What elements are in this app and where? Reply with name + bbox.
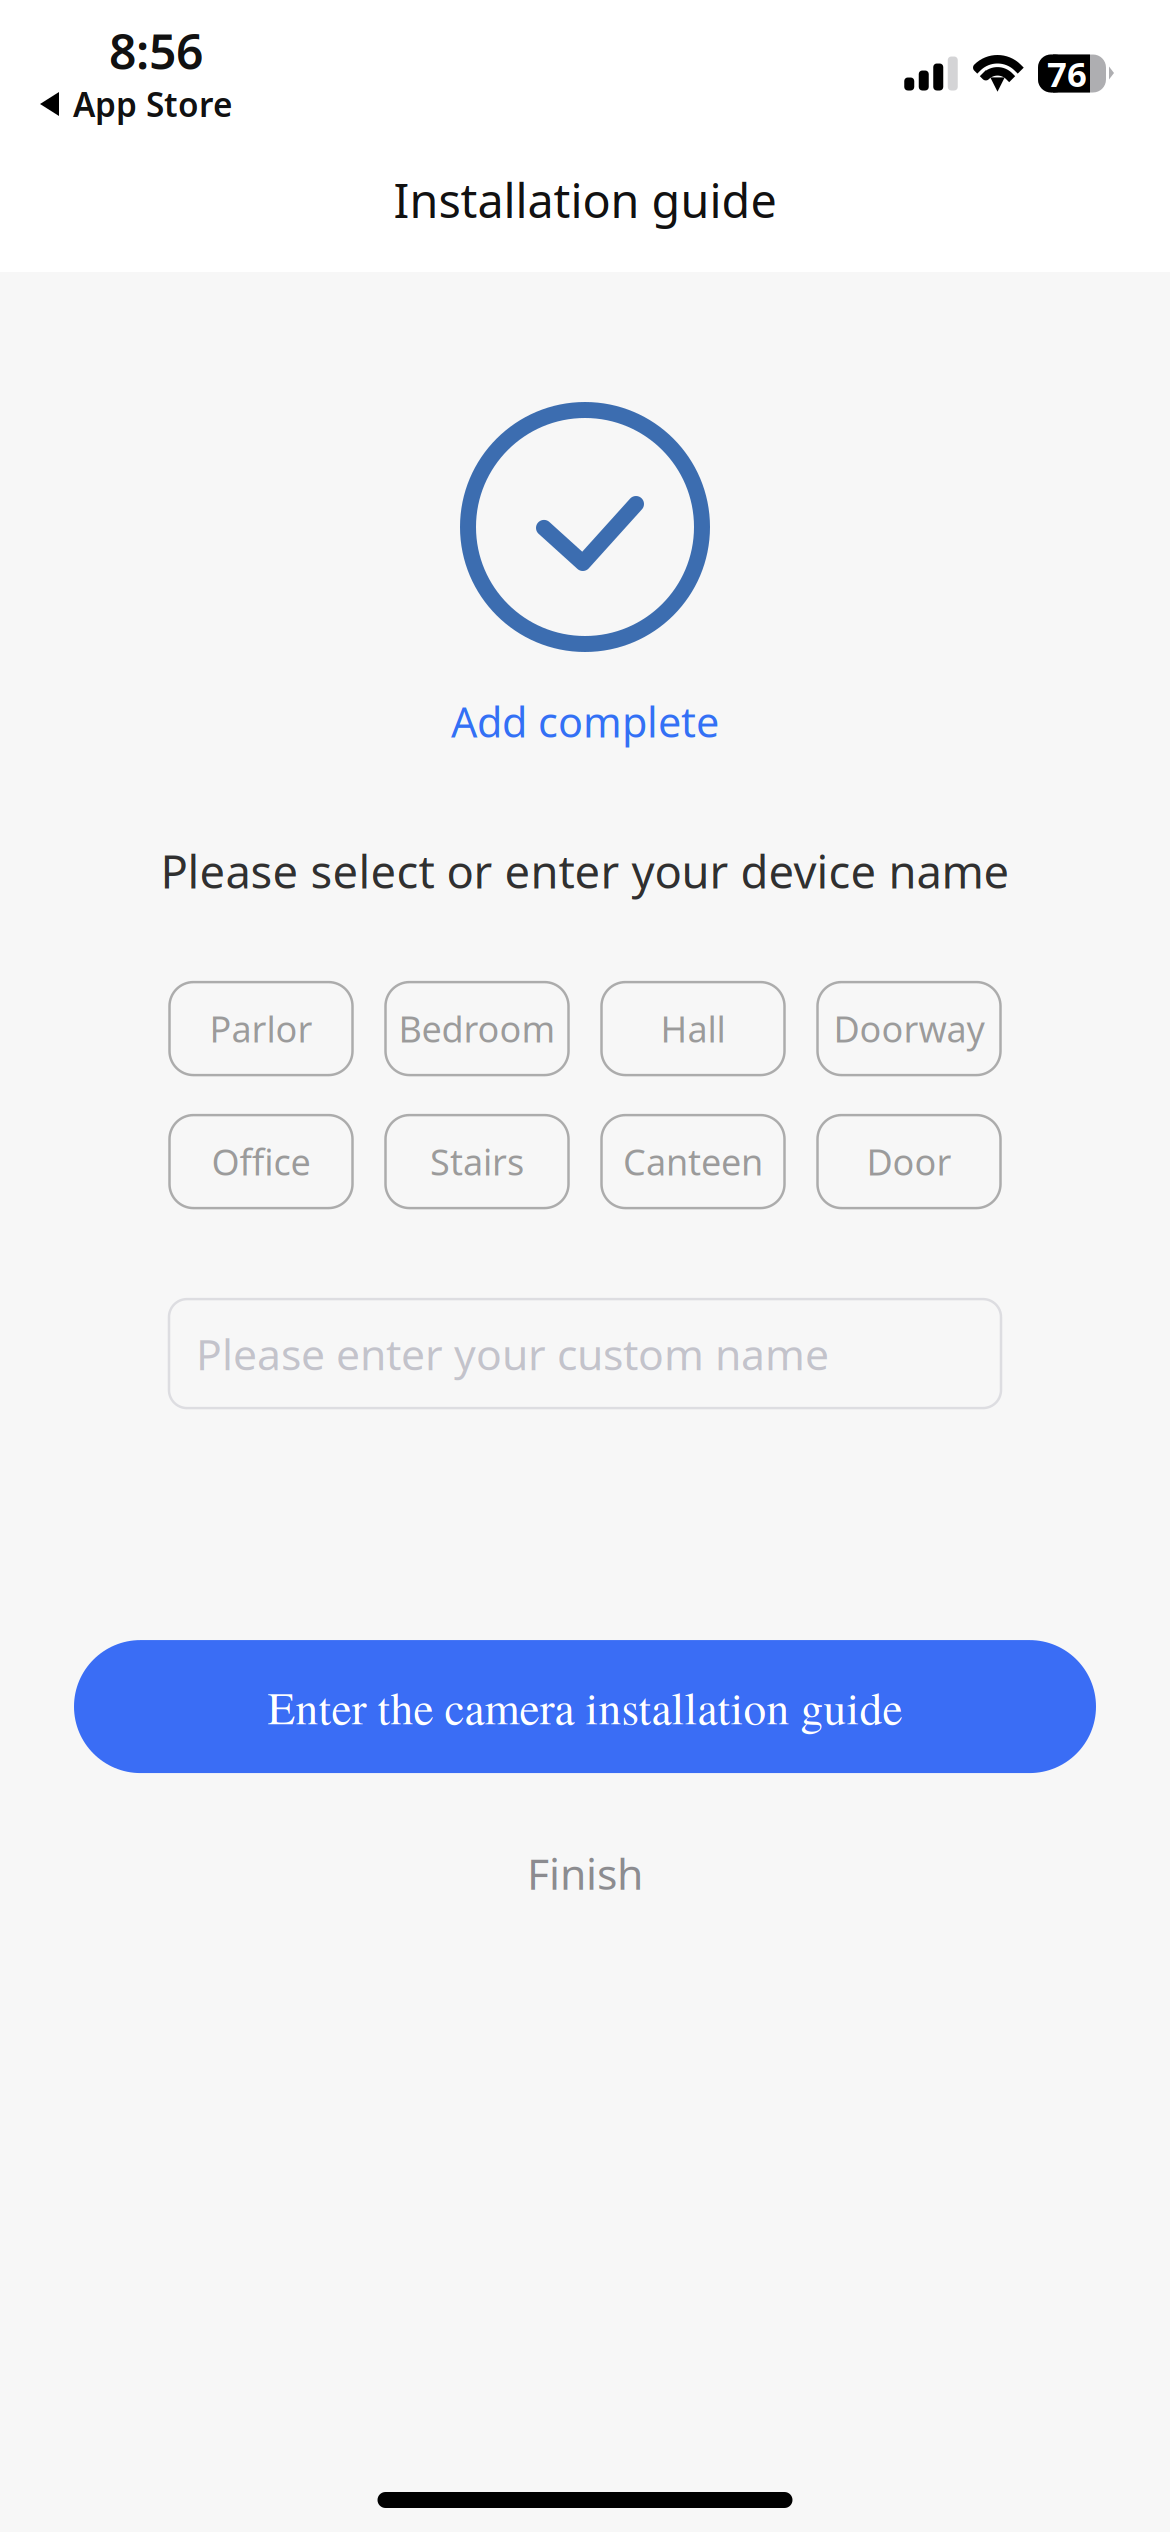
staticText: Finish bbox=[527, 1845, 643, 1901]
staticText: Hall bbox=[660, 1005, 725, 1052]
staticText: Bedroom bbox=[398, 1005, 555, 1052]
button[interactable]: Door bbox=[817, 1115, 1000, 1208]
staticText: Installation guide bbox=[393, 169, 776, 231]
button[interactable]: Hall bbox=[601, 982, 784, 1075]
staticText: Stairs bbox=[430, 1138, 524, 1185]
button[interactable]: Office bbox=[169, 1115, 352, 1208]
staticText: Parlor bbox=[209, 1005, 312, 1052]
staticText: Office bbox=[211, 1138, 310, 1185]
staticText: Door bbox=[866, 1138, 951, 1185]
button[interactable]: Finish bbox=[435, 1833, 735, 1913]
button[interactable]: Doorway bbox=[817, 982, 1000, 1075]
button[interactable]: Canteen bbox=[601, 1115, 784, 1208]
button[interactable]: Bedroom bbox=[385, 982, 568, 1075]
button[interactable]: Enter the camera installation guide bbox=[74, 1640, 1096, 1773]
staticText: 76 bbox=[1047, 50, 1087, 96]
staticText: Doorway bbox=[833, 1005, 984, 1052]
staticText: 8:56 bbox=[109, 19, 203, 83]
staticText: App Store bbox=[73, 82, 233, 126]
staticText: Add complete bbox=[451, 694, 719, 749]
staticText: Enter the camera installation guide bbox=[267, 1676, 902, 1737]
button[interactable]: Stairs bbox=[385, 1115, 568, 1208]
button[interactable]: Please enter your custom name bbox=[169, 1299, 1001, 1408]
button[interactable]: Parlor bbox=[169, 982, 352, 1075]
staticText: Please enter your custom name bbox=[196, 1325, 829, 1382]
staticText: Please select or enter your device name bbox=[160, 841, 1009, 901]
staticText: Canteen bbox=[623, 1138, 763, 1185]
button[interactable]: App Store bbox=[0, 80, 233, 128]
